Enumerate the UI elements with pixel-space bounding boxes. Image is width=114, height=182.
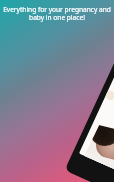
- staticText: Everything for your pregnancy and baby i…: [0, 5, 114, 22]
